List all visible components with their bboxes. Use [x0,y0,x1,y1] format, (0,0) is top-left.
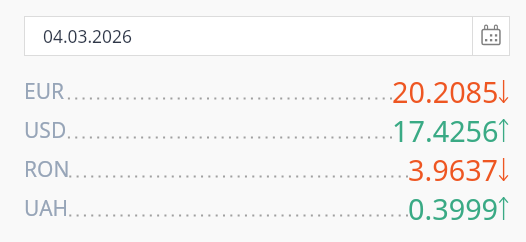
staticText: RON [24,155,70,184]
staticText: EUR [24,77,65,106]
button[interactable]: RON [24,150,512,189]
staticText: 04.03.2026 [43,24,472,48]
staticText: 20.2085 [392,72,499,111]
staticText: 17.4256 [392,111,499,150]
button[interactable]: Pick date [472,16,510,56]
button[interactable]: EUR [24,72,512,111]
staticText: 0.3999 [408,189,499,228]
button[interactable]: USD [24,111,512,150]
staticText: 3.9637 [408,150,499,189]
button[interactable]: UAH [24,189,512,228]
staticText: USD [24,116,67,145]
button[interactable]: 04.03.2026 [24,16,510,56]
staticText: UAH [24,194,69,223]
